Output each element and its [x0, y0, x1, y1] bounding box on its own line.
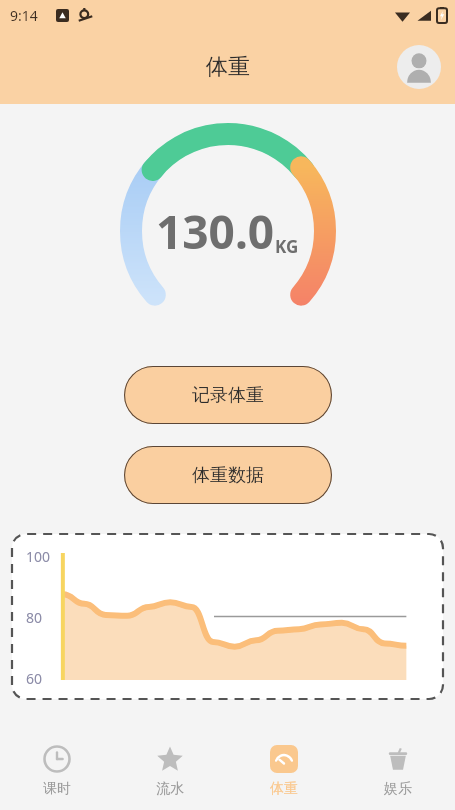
staticText: 娱乐 — [384, 780, 412, 798]
staticText: 80 — [26, 608, 43, 627]
button[interactable]: 体重数据 — [124, 446, 332, 504]
button[interactable]: 娱乐 — [341, 732, 455, 810]
button[interactable]: 课时 — [0, 732, 113, 810]
staticText: 130.0 — [156, 200, 275, 263]
button[interactable]: Profile — [397, 45, 441, 89]
other: Weight — [270, 745, 298, 773]
staticText: 体重数据 — [192, 464, 264, 487]
staticText: 记录体重 — [192, 384, 264, 407]
button[interactable]: Weight — [227, 732, 341, 810]
staticText: 流水 — [156, 780, 184, 798]
staticText: KG — [275, 235, 299, 258]
staticText: 体重 — [270, 780, 298, 798]
staticText: 课时 — [43, 780, 71, 798]
staticText: 100 — [26, 547, 51, 566]
staticText: 60 — [26, 669, 43, 688]
staticText: 9:14 — [10, 6, 38, 25]
staticText: 体重 — [206, 53, 250, 81]
button[interactable] — [12, 534, 443, 699]
button[interactable]: 记录体重 — [124, 366, 332, 424]
button[interactable]: 流水 — [113, 732, 227, 810]
